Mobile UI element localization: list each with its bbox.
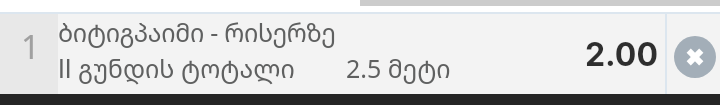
button[interactable]: 1	[0, 14, 720, 94]
staticText: ბიტიგპაიმი - რისერზე	[58, 15, 336, 49]
staticText: 2.5 მეტი	[346, 51, 451, 85]
button[interactable]: Remove selection	[667, 14, 720, 94]
staticText: 1	[21, 24, 40, 69]
staticText: 2.00	[568, 35, 658, 74]
staticText: II გუნდის ტოტალი	[58, 51, 295, 85]
